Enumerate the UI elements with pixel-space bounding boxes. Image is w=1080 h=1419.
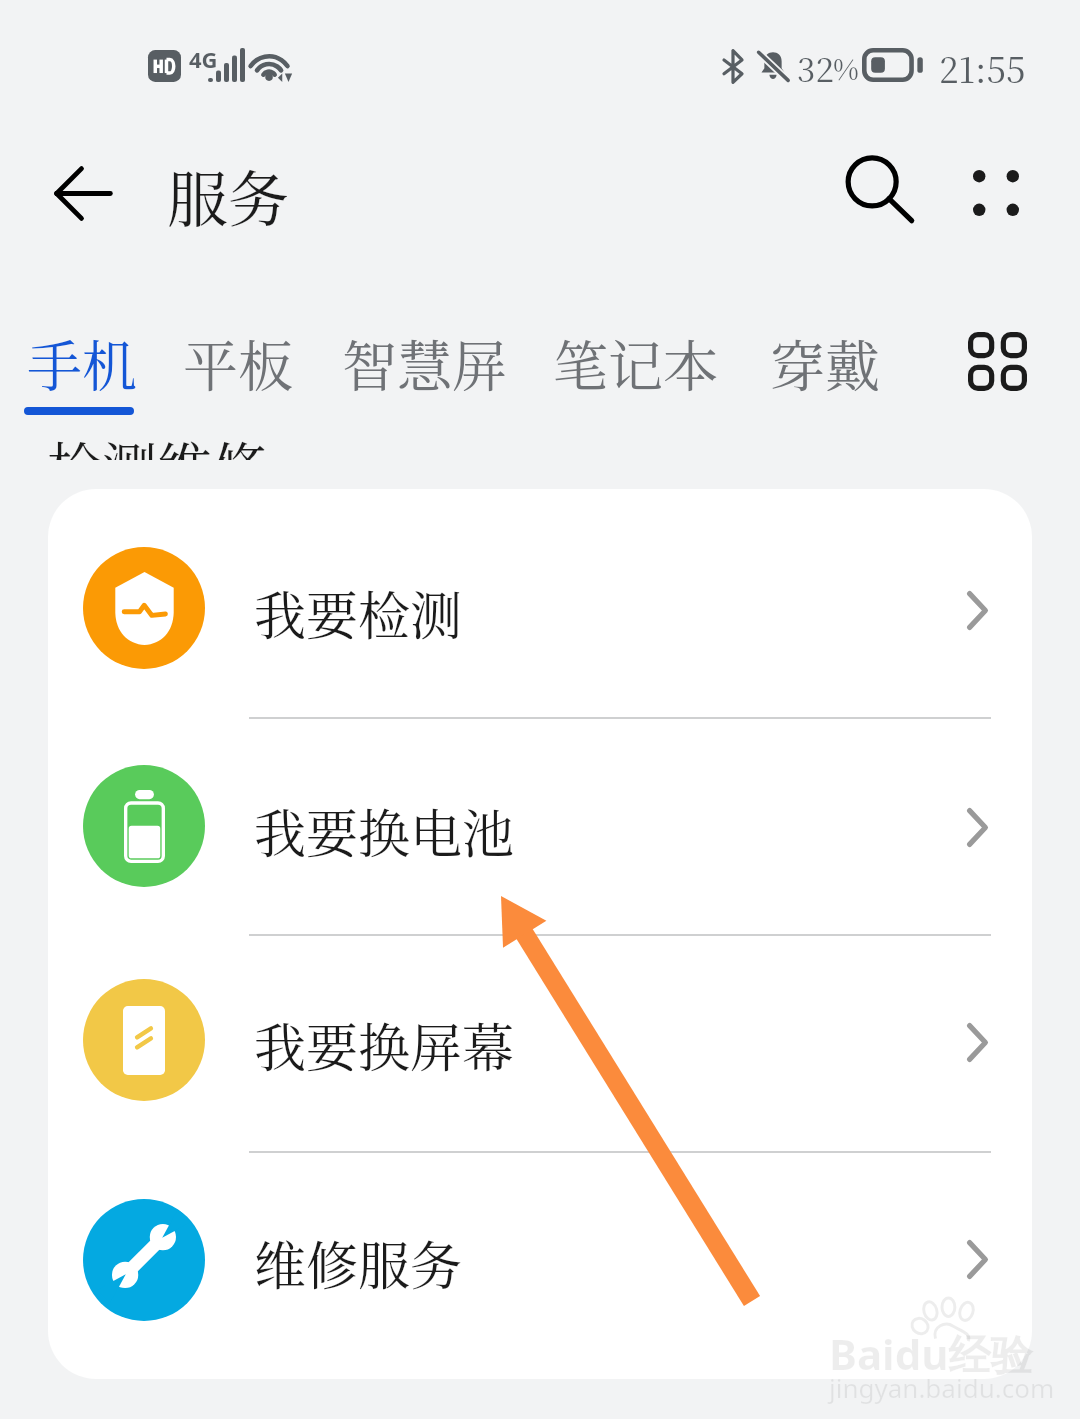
staticText: 手机 [27,323,138,402]
staticText: 4G [189,44,218,74]
button[interactable]: 手机 [6,323,158,423]
button[interactable]: 笔记本 [535,323,737,423]
staticText: % [833,48,859,88]
staticText: 我要换屏幕 [254,1007,515,1082]
button[interactable]: 服务 [167,152,290,240]
button[interactable]: Back [33,143,133,243]
staticText: 21:55 [939,43,1026,93]
staticText: 笔记本 [553,323,719,402]
staticText: 检测维修 [47,425,268,460]
button[interactable]: 我要换屏幕 [48,935,1032,1152]
button[interactable]: 我要换电池 [48,718,1032,935]
staticText: Baidu经验 [829,1325,1033,1382]
button[interactable]: 平板 [163,323,314,423]
staticText: 平板 [183,323,294,402]
button[interactable]: 智慧屏 [323,323,527,423]
button[interactable]: 我要检测 [48,489,1032,718]
button[interactable]: Grid view [948,312,1046,410]
button[interactable]: 穿戴 [748,323,902,423]
button[interactable]: Search [833,142,933,242]
staticText: 维修服务 [254,1225,463,1300]
button[interactable]: 维修服务 [48,1152,1032,1379]
staticText: 32 [797,44,834,91]
button[interactable]: More options [946,143,1046,243]
staticText: 穿戴 [770,323,881,402]
staticText: 服务 [167,152,290,240]
staticText: jingyan.baidu.com [829,1370,1055,1405]
staticText: 智慧屏 [342,323,508,402]
staticText: 我要换电池 [254,793,515,868]
staticText: 我要检测 [254,575,463,650]
